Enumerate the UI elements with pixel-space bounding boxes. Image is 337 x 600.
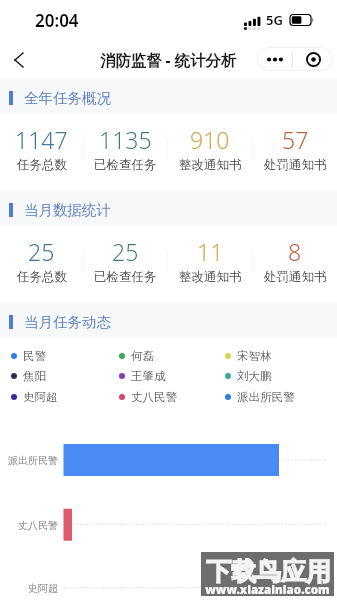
staticText: 丈八民警 xyxy=(131,390,177,404)
staticText: 焦阳 xyxy=(23,369,46,383)
staticText: 整改通知书 xyxy=(179,269,242,285)
staticText: 处罚通知书 xyxy=(264,269,327,285)
staticText: 25 xyxy=(112,236,139,267)
staticText: 刘大鹏 xyxy=(237,369,272,383)
staticText: 史阿超 xyxy=(23,390,58,404)
staticText: 1135 xyxy=(99,124,152,155)
button[interactable]: More options xyxy=(257,47,292,71)
staticText: 处罚通知书 xyxy=(264,157,327,173)
staticText: 派出所民警 xyxy=(237,390,295,404)
staticText: 已检查任务 xyxy=(94,157,157,173)
staticText: 11 xyxy=(197,236,224,267)
staticText: 王肇成 xyxy=(131,369,166,383)
staticText: 5G xyxy=(266,11,283,29)
staticText: 57 xyxy=(282,124,309,155)
button[interactable]: Back xyxy=(5,46,33,74)
staticText: 任务总数 xyxy=(17,269,67,285)
staticText: 当月数据统计 xyxy=(24,201,111,219)
staticText: 丈八民警 xyxy=(18,519,58,532)
staticText: 任务总数 xyxy=(17,157,67,173)
staticText: 20:04 xyxy=(35,9,79,32)
staticText: 910 xyxy=(190,124,230,155)
staticText: 消防监督 - 统计分析 xyxy=(100,50,237,71)
staticText: www.xiazainiao.com xyxy=(205,582,330,596)
staticText: 8 xyxy=(288,236,302,267)
staticText: 全年任务概况 xyxy=(24,89,111,107)
staticText: 何磊 xyxy=(131,349,154,363)
staticText: 宋智林 xyxy=(237,349,272,363)
staticText: 已检查任务 xyxy=(94,269,157,285)
staticText: 下载鸟应用 xyxy=(206,556,331,587)
staticText: 整改通知书 xyxy=(179,157,242,173)
staticText: 民警 xyxy=(23,349,46,363)
staticText: 史阿超 xyxy=(28,582,58,595)
staticText: 派出所民警 xyxy=(8,454,58,467)
staticText: 25 xyxy=(28,236,55,267)
button[interactable]: Close mini program xyxy=(293,47,333,71)
staticText: 1147 xyxy=(15,124,68,155)
staticText: 当月任务动态 xyxy=(24,313,111,331)
